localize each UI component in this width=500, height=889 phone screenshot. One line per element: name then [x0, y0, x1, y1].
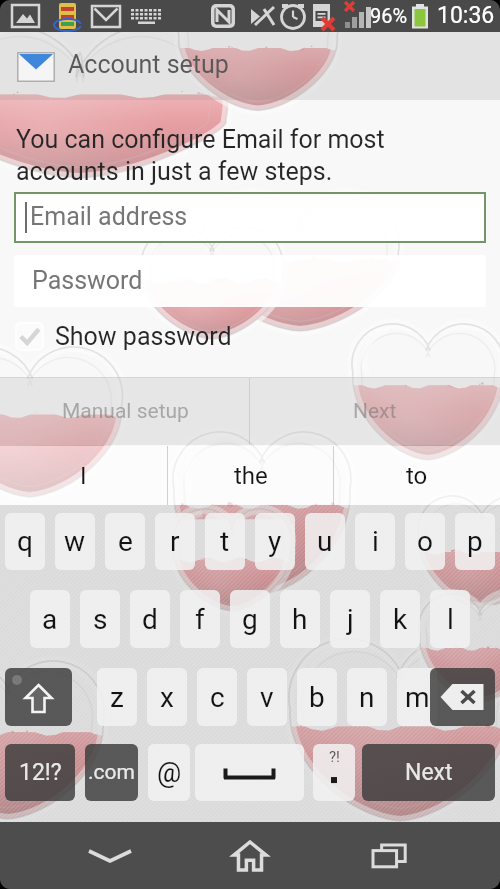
button[interactable]: Show password: [15, 320, 232, 352]
button[interactable]: m: [397, 668, 437, 726]
button[interactable]: s: [80, 590, 120, 648]
button[interactable]: Space: [195, 744, 304, 801]
button[interactable]: f: [180, 590, 220, 648]
button[interactable]: d: [130, 590, 170, 648]
staticText: h: [292, 603, 308, 636]
button[interactable]: Home: [167, 822, 333, 889]
staticText: @: [157, 757, 182, 789]
staticText: n: [359, 681, 375, 714]
button[interactable]: to: [333, 446, 500, 505]
staticText: w: [64, 525, 86, 558]
button[interactable]: q: [5, 513, 45, 570]
staticText: o: [417, 525, 433, 558]
button[interactable]: n: [347, 668, 387, 726]
staticText: Next: [353, 399, 397, 424]
button[interactable]: Next: [250, 378, 500, 445]
staticText: k: [393, 603, 408, 636]
button[interactable]: a: [30, 590, 70, 648]
staticText: l: [447, 603, 454, 636]
button[interactable]: Manual setup: [0, 378, 250, 445]
staticText: r: [170, 525, 180, 558]
button[interactable]: j: [330, 590, 370, 648]
staticText: e: [118, 525, 133, 558]
staticText: Manual setup: [62, 399, 189, 424]
staticText: b: [309, 681, 325, 714]
staticText: I: [80, 462, 87, 490]
staticText: u: [317, 525, 333, 558]
button[interactable]: o: [405, 513, 445, 570]
button[interactable]: Recents: [307, 822, 473, 889]
staticText: 96%: [370, 4, 408, 27]
staticText: p: [467, 525, 483, 558]
button[interactable]: Next: [362, 744, 495, 801]
button[interactable]: x: [147, 668, 187, 726]
staticText: f: [195, 603, 205, 636]
staticText: 10:36: [437, 2, 495, 29]
button[interactable]: i: [355, 513, 395, 570]
button[interactable]: Shift: [5, 668, 72, 726]
staticText: g: [242, 603, 258, 636]
staticText: Email address: [30, 202, 188, 231]
staticText: ?!: [329, 748, 340, 766]
staticText: z: [110, 681, 124, 714]
staticText: to: [406, 462, 428, 490]
button[interactable]: y: [255, 513, 295, 570]
staticText: j: [347, 603, 354, 636]
staticText: s: [93, 603, 108, 636]
staticText: m: [405, 681, 430, 714]
staticText: Password: [32, 266, 143, 295]
button[interactable]: v: [247, 668, 287, 726]
staticText: y: [268, 525, 282, 558]
button[interactable]: p: [455, 513, 495, 570]
staticText: Show password: [55, 322, 232, 351]
staticText: c: [210, 681, 225, 714]
button[interactable]: Period and symbols: [313, 744, 355, 801]
button[interactable]: the: [167, 446, 334, 505]
button[interactable]: w: [55, 513, 95, 570]
staticText: 12!?: [19, 759, 62, 786]
button[interactable]: e: [105, 513, 145, 570]
staticText: t: [220, 525, 230, 558]
staticText: Next: [405, 759, 453, 786]
staticText: Account setup: [68, 50, 229, 79]
button[interactable]: z: [97, 668, 137, 726]
staticText: q: [17, 525, 33, 558]
button[interactable]: g: [230, 590, 270, 648]
staticText: the: [234, 462, 268, 490]
staticText: You can configure Email for most account…: [16, 125, 416, 186]
button[interactable]: c: [197, 668, 237, 726]
staticText: v: [260, 681, 274, 714]
staticText: i: [372, 525, 379, 558]
staticText: x: [160, 681, 174, 714]
button[interactable]: u: [305, 513, 345, 570]
button[interactable]: Email address: [14, 192, 486, 243]
staticText: d: [142, 603, 158, 636]
button[interactable]: k: [380, 590, 420, 648]
button[interactable]: r: [155, 513, 195, 570]
button[interactable]: b: [297, 668, 337, 726]
button[interactable]: Password: [14, 255, 486, 307]
button[interactable]: .com: [85, 744, 138, 801]
button[interactable]: 12!?: [5, 744, 75, 801]
button[interactable]: l: [430, 590, 470, 648]
button[interactable]: Back: [27, 822, 193, 889]
button[interactable]: @: [148, 744, 190, 801]
button[interactable]: h: [280, 590, 320, 648]
staticText: .com: [88, 760, 135, 785]
button[interactable]: Backspace: [430, 668, 495, 726]
staticText: a: [42, 603, 58, 636]
button[interactable]: I: [0, 446, 167, 505]
button[interactable]: t: [205, 513, 245, 570]
